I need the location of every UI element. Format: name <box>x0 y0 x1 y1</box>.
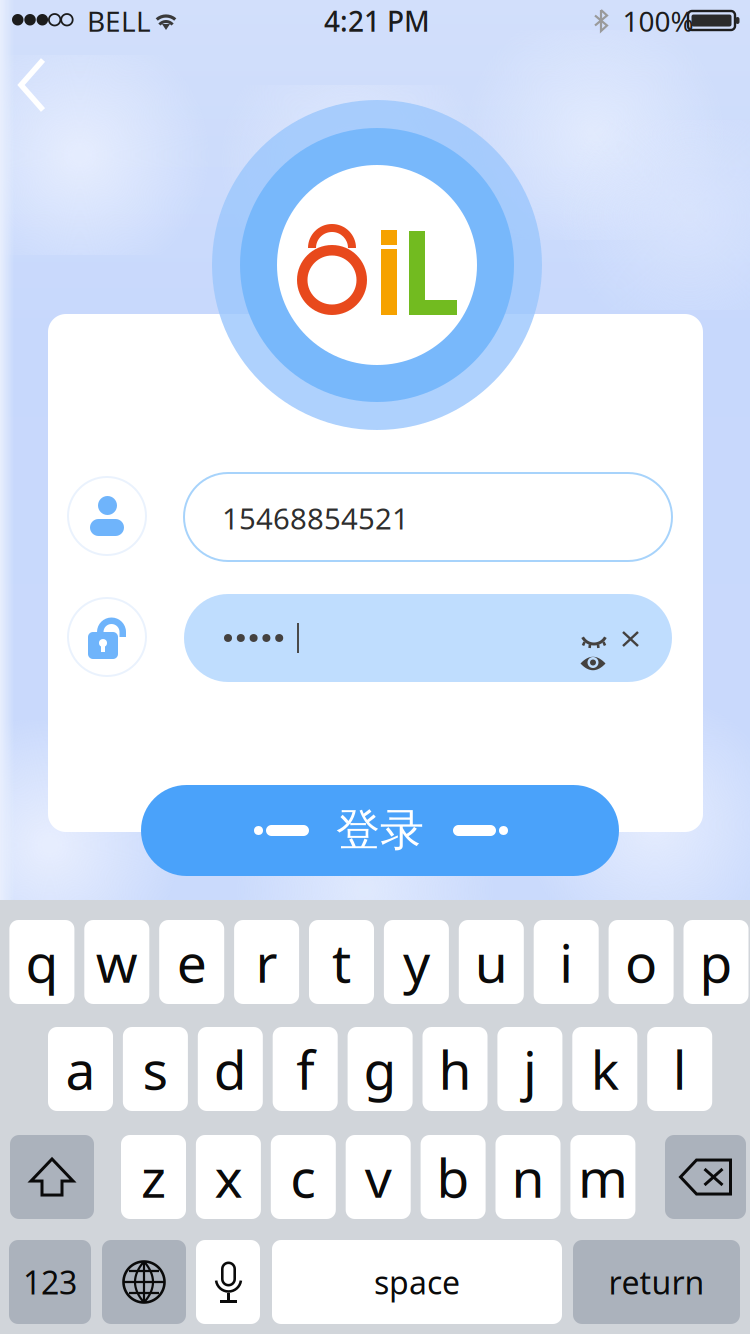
button[interactable]: 登录 <box>141 785 619 876</box>
button[interactable]: n <box>495 1135 560 1219</box>
staticText: i <box>559 927 573 997</box>
button[interactable]: Dictate <box>196 1240 260 1324</box>
button[interactable]: q <box>9 920 74 1004</box>
button[interactable]: g <box>348 1027 413 1111</box>
staticText: 登录 <box>336 803 424 857</box>
button[interactable]: Clear text <box>622 631 639 647</box>
button[interactable]: a <box>48 1027 113 1111</box>
button[interactable]: f <box>273 1027 338 1111</box>
button[interactable]: Next keyboard <box>102 1240 186 1324</box>
staticText: o <box>625 927 657 997</box>
button[interactable]: k <box>572 1027 637 1111</box>
button[interactable]: s <box>123 1027 188 1111</box>
button[interactable]: v <box>346 1135 411 1219</box>
staticText: t <box>332 927 351 997</box>
staticText: n <box>511 1142 544 1212</box>
button[interactable]: m <box>570 1135 635 1219</box>
staticText: u <box>475 927 508 997</box>
button[interactable]: d <box>198 1027 263 1111</box>
button[interactable]: 123 <box>9 1240 91 1324</box>
button[interactable]: p <box>683 920 748 1004</box>
button[interactable]: return <box>573 1240 740 1324</box>
button[interactable]: space <box>272 1240 562 1324</box>
staticText: 123 <box>23 1261 77 1303</box>
button[interactable]: z <box>121 1135 186 1219</box>
staticText: v <box>365 1142 392 1212</box>
button[interactable]: x <box>196 1135 261 1219</box>
staticText: y <box>403 927 430 997</box>
staticText: 4:21 PM <box>324 2 430 40</box>
button[interactable]: Show password <box>580 655 606 672</box>
button[interactable]: i <box>534 920 599 1004</box>
button[interactable]: Hide password <box>581 632 607 648</box>
staticText: b <box>437 1142 470 1212</box>
staticText: c <box>290 1142 316 1212</box>
staticText: f <box>296 1034 314 1104</box>
button[interactable]: o <box>609 920 674 1004</box>
staticText: z <box>141 1142 166 1212</box>
staticText: w <box>96 927 138 997</box>
staticText: p <box>699 927 732 997</box>
staticText: r <box>256 927 278 997</box>
staticText: k <box>591 1034 619 1104</box>
button[interactable]: c <box>271 1135 336 1219</box>
button[interactable]: Back <box>8 52 60 118</box>
button[interactable]: t <box>309 920 374 1004</box>
button[interactable]: r <box>234 920 299 1004</box>
staticText: 15468854521 <box>222 498 409 537</box>
button[interactable]: h <box>422 1027 487 1111</box>
staticText: 100% <box>622 2 693 40</box>
button[interactable]: l <box>647 1027 712 1111</box>
button[interactable]: b <box>421 1135 486 1219</box>
staticText: h <box>438 1034 471 1104</box>
staticText: l <box>673 1034 687 1104</box>
staticText: d <box>214 1034 247 1104</box>
button[interactable]: u <box>459 920 524 1004</box>
staticText: q <box>25 927 58 997</box>
button[interactable]: e <box>159 920 224 1004</box>
button[interactable]: Delete <box>665 1135 746 1219</box>
staticText: return <box>608 1261 704 1303</box>
staticText: a <box>65 1034 95 1104</box>
staticText: m <box>578 1142 628 1212</box>
staticText: space <box>374 1261 460 1303</box>
staticText: x <box>214 1142 242 1212</box>
staticText: g <box>364 1034 397 1104</box>
button[interactable]: Shift <box>10 1135 94 1219</box>
staticText: BELL <box>87 2 151 40</box>
staticText: e <box>177 927 207 997</box>
button[interactable]: w <box>84 920 149 1004</box>
staticText: j <box>523 1034 537 1104</box>
button[interactable]: y <box>384 920 449 1004</box>
staticText: s <box>142 1034 168 1104</box>
button[interactable]: j <box>497 1027 562 1111</box>
